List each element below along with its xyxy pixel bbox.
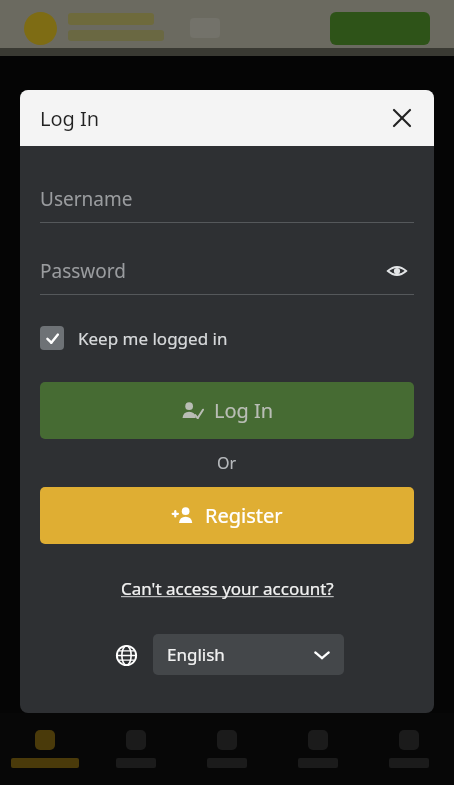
button[interactable]: Show password	[380, 254, 414, 288]
button[interactable]	[0, 713, 90, 785]
button[interactable]: Register	[40, 487, 414, 544]
button[interactable]	[272, 713, 363, 785]
button[interactable]: Password	[40, 252, 414, 290]
staticText: Username	[40, 186, 133, 212]
button[interactable]: Log In	[40, 382, 414, 439]
staticText: Register	[205, 502, 283, 529]
button[interactable]: Close	[382, 98, 422, 138]
button[interactable]	[181, 713, 272, 785]
staticText: Log In	[40, 105, 100, 132]
other: Language	[111, 640, 141, 670]
staticText: Or	[217, 452, 237, 474]
button[interactable]	[363, 713, 454, 785]
staticText: Password	[40, 258, 126, 284]
button[interactable]: Can't access your account?	[117, 573, 338, 604]
button[interactable]: Username	[40, 180, 414, 218]
button[interactable]	[90, 713, 181, 785]
staticText: Log In	[214, 397, 274, 424]
button[interactable]: Keep me logged in	[40, 321, 414, 355]
staticText: English	[167, 643, 225, 666]
staticText: Keep me logged in	[78, 327, 228, 350]
staticText: Can't access your account?	[121, 577, 334, 600]
button[interactable]: English	[153, 634, 344, 675]
